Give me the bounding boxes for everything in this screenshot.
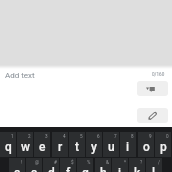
staticText: d — [48, 166, 55, 172]
staticText: h — [100, 166, 107, 172]
button[interactable]: l — [146, 158, 162, 172]
button[interactable]: s — [26, 158, 42, 172]
button[interactable]: h — [95, 158, 111, 172]
staticText: u — [108, 140, 115, 154]
staticText: l — [152, 166, 156, 172]
button[interactable]: r — [52, 132, 68, 157]
staticText: j — [118, 166, 122, 172]
staticText: 7 — [114, 134, 117, 139]
button[interactable]: p — [155, 132, 171, 157]
button[interactable]: w — [17, 132, 33, 157]
staticText: 0 — [166, 134, 169, 139]
staticText: p — [160, 140, 167, 154]
button[interactable]: k — [129, 158, 145, 172]
staticText: # — [54, 160, 57, 165]
button[interactable]: q — [0, 132, 16, 157]
staticText: % — [87, 160, 91, 165]
staticText: 8 — [131, 134, 134, 139]
staticText: * — [124, 160, 126, 165]
button[interactable]: o — [138, 132, 154, 157]
staticText: e — [39, 140, 46, 154]
staticText: q — [5, 140, 12, 154]
button[interactable]: u — [103, 132, 119, 157]
button[interactable]: y — [86, 132, 102, 157]
button[interactable]: e — [34, 132, 50, 157]
staticText: i — [126, 140, 130, 154]
staticText: y — [91, 140, 97, 154]
staticText: w — [21, 140, 30, 154]
staticText: ! — [21, 160, 23, 165]
staticText: / — [158, 160, 160, 165]
staticText: s — [31, 166, 38, 172]
staticText: 2 — [28, 134, 31, 139]
staticText: 6 — [97, 134, 100, 139]
staticText: ? — [140, 160, 143, 165]
staticText: a — [14, 166, 21, 172]
staticText: 0/160 — [152, 72, 165, 77]
button[interactable]: j — [112, 158, 128, 172]
staticText: r — [58, 140, 63, 154]
staticText: Add text — [5, 71, 35, 80]
staticText: $ — [71, 160, 74, 165]
staticText: o — [143, 140, 150, 154]
staticText: k — [134, 166, 141, 172]
staticText: 1 — [11, 134, 14, 139]
button[interactable]: Handwriting — [137, 108, 168, 123]
button[interactable]: d — [43, 158, 59, 172]
button[interactable]: Voice input — [137, 81, 168, 96]
staticText: & — [106, 160, 109, 165]
staticText: 3 — [45, 134, 48, 139]
button[interactable]: t — [69, 132, 85, 157]
staticText: 4 — [63, 134, 66, 139]
staticText: t — [75, 140, 79, 154]
button[interactable]: a — [9, 158, 25, 172]
staticText: 5 — [80, 134, 83, 139]
button[interactable]: i — [120, 132, 136, 157]
staticText: g — [82, 166, 89, 172]
staticText: 9 — [149, 134, 152, 139]
staticText: f — [66, 166, 71, 172]
staticText: @ — [35, 160, 40, 165]
button[interactable]: f — [60, 158, 76, 172]
button[interactable]: g — [77, 158, 93, 172]
